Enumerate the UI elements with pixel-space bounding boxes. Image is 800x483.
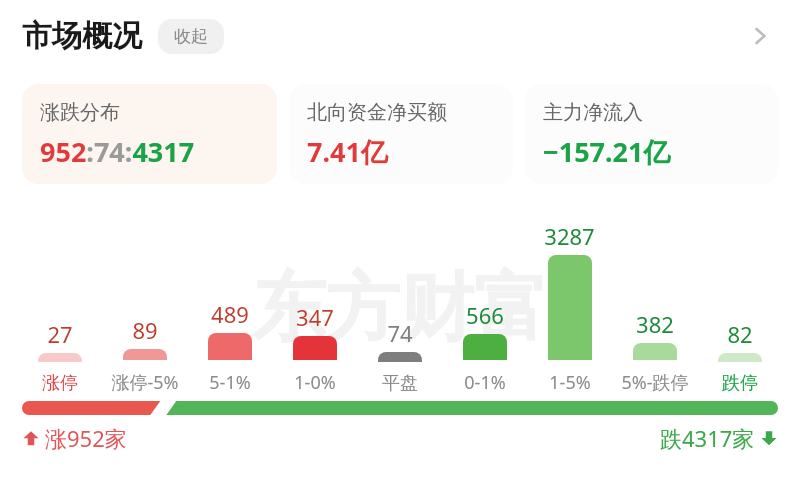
button[interactable]: 收起 (158, 19, 224, 54)
staticText: 5%-跌停 (621, 370, 689, 395)
staticText: 收起 (174, 26, 208, 47)
staticText: 1-0% (294, 370, 336, 395)
staticText: 7.41亿 (307, 133, 388, 170)
staticText: 952:74:4317 (40, 133, 195, 170)
staticText: 平盘 (382, 372, 418, 395)
staticText: 市场概况 (22, 17, 142, 55)
staticText: 涨停 (42, 372, 78, 395)
button[interactable]: 涨跌分布 (22, 84, 277, 184)
staticText: 566 (466, 300, 504, 330)
staticText: 东方财富 (252, 262, 548, 355)
button[interactable]: 主力净流入 (525, 84, 778, 184)
staticText: 涨952家 (45, 423, 127, 453)
staticText: 89 (132, 315, 158, 345)
staticText: 主力净流入 (543, 100, 643, 125)
staticText: 0-1% (464, 370, 506, 395)
staticText: 82 (727, 319, 753, 349)
staticText: 347 (296, 302, 334, 332)
staticText: 382 (636, 309, 674, 339)
staticText: 跌停 (722, 372, 758, 395)
staticText: −157.21亿 (543, 133, 671, 170)
staticText: 涨跌分布 (40, 100, 120, 125)
staticText: 74 (387, 318, 413, 348)
button[interactable]: 北向资金净买额 (289, 84, 513, 184)
staticText: 27 (47, 319, 73, 349)
button[interactable]: More (738, 14, 782, 58)
staticText: 北向资金净买额 (307, 100, 447, 125)
staticText: 5-1% (209, 370, 251, 395)
staticText: 489 (211, 299, 249, 329)
staticText: 1-5% (549, 370, 591, 395)
staticText: 涨停-5% (111, 370, 179, 395)
staticText: 跌4317家 (660, 423, 755, 453)
staticText: 3287 (544, 221, 595, 251)
